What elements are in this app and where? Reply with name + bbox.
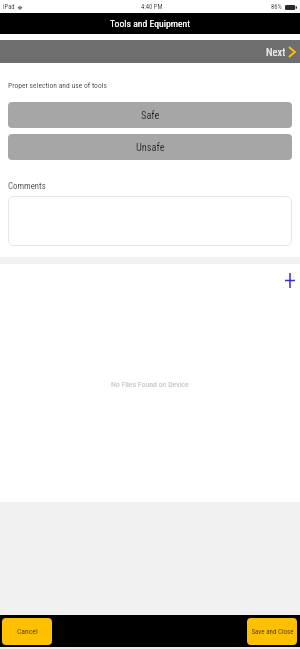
staticText: Safe: [141, 109, 160, 121]
staticText: iPad: [3, 3, 15, 11]
button[interactable]: Add attachment: [281, 272, 298, 289]
staticText: Next: [266, 46, 286, 58]
staticText: 4:40 PM: [141, 3, 163, 11]
staticText: Cancel: [17, 627, 38, 636]
button[interactable]: Unsafe: [8, 134, 292, 160]
button[interactable]: Safe: [8, 102, 292, 128]
staticText: No Files Found on Device: [111, 380, 189, 389]
staticText: Comments: [8, 181, 46, 191]
staticText: Save and Close: [251, 628, 294, 636]
staticText: Proper selection and use of tools: [8, 81, 107, 90]
button[interactable]: Cancel: [2, 618, 52, 645]
button[interactable]: Save and Close: [247, 618, 297, 645]
staticText: Tools and Equipment: [110, 18, 191, 29]
button[interactable]: [8, 196, 292, 246]
button[interactable]: Next: [0, 40, 300, 63]
staticText: Unsafe: [136, 141, 165, 153]
staticText: 86%: [271, 3, 282, 11]
